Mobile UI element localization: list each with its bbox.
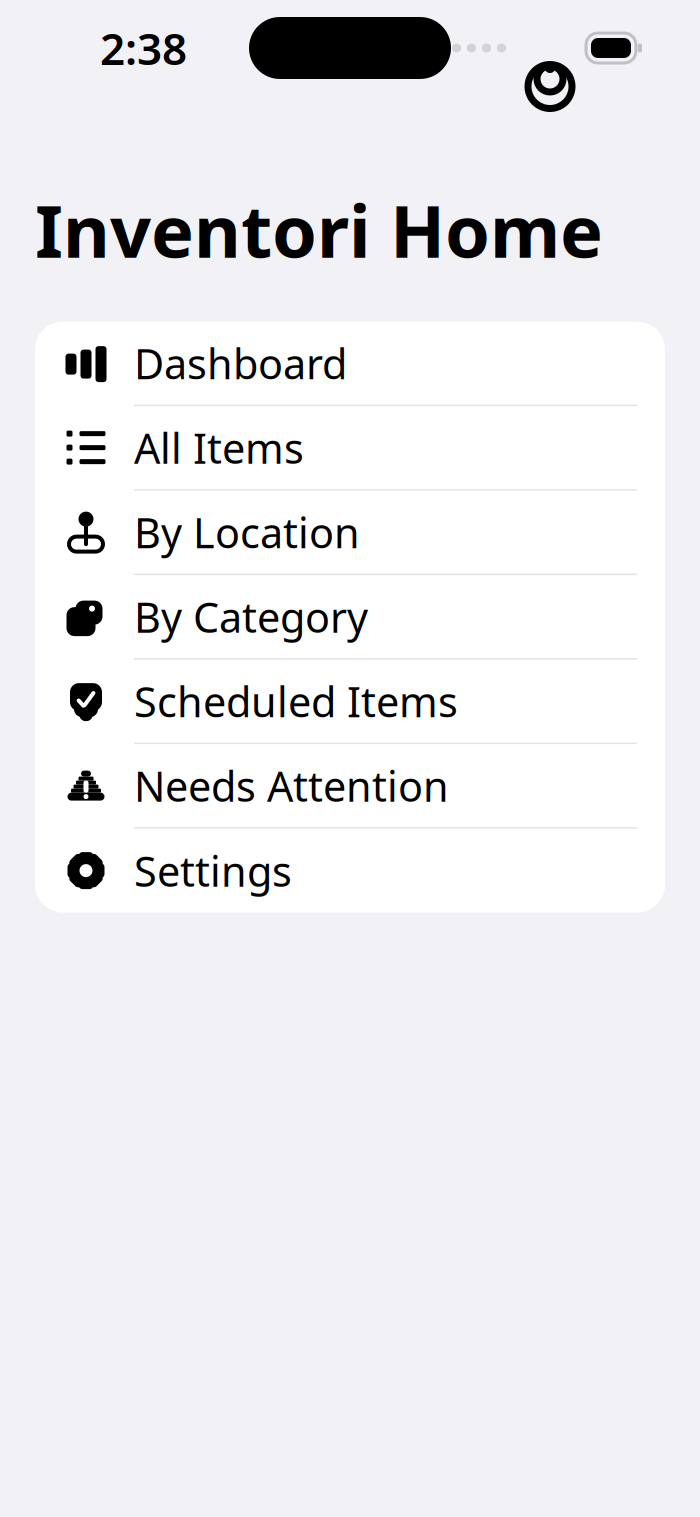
staticText: Needs Attention — [134, 758, 449, 813]
staticText: All Items — [134, 420, 304, 475]
button[interactable]: Settings — [35, 829, 665, 913]
button[interactable]: Needs Attention — [35, 744, 665, 829]
staticText: Scheduled Items — [134, 674, 458, 729]
staticText: 2:38 — [100, 19, 187, 77]
button[interactable]: All Items — [35, 406, 665, 491]
staticText: By Category — [134, 589, 368, 644]
staticText: By Location — [134, 505, 360, 560]
button[interactable]: Scheduled Items — [35, 660, 665, 744]
staticText: Dashboard — [134, 336, 347, 391]
button[interactable]: By Location — [35, 491, 665, 575]
button[interactable]: Dashboard — [35, 322, 665, 406]
staticText: Inventori Home — [35, 182, 603, 278]
staticText: Settings — [134, 843, 292, 898]
button[interactable]: By Category — [35, 575, 665, 660]
